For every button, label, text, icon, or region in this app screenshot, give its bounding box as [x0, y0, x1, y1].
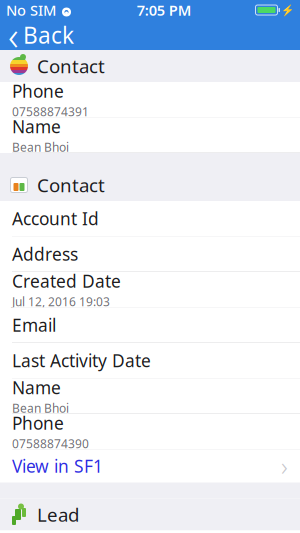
staticText: Account Id: [12, 207, 99, 230]
staticText: Phone: [12, 411, 64, 434]
button[interactable]: View in SF1: [0, 449, 300, 482]
staticText: 7:05 PM: [137, 0, 192, 20]
staticText: Last Activity Date: [12, 349, 151, 372]
staticText: 07588874390: [12, 435, 89, 451]
staticText: View in SF1: [12, 454, 103, 477]
staticText: 07588874391: [12, 103, 89, 119]
staticText: No SIM: [6, 0, 56, 20]
button[interactable]: ‹: [0, 20, 84, 50]
staticText: Bean Bhoi: [12, 139, 69, 155]
staticText: Address: [12, 242, 78, 265]
staticText: Jul 12, 2016 19:03: [12, 293, 110, 309]
staticText: Contact: [37, 54, 105, 78]
staticText: ‹: [8, 8, 19, 61]
staticText: Created Date: [12, 269, 121, 292]
staticText: Lead: [37, 502, 79, 527]
staticText: Name: [12, 115, 61, 138]
staticText: Phone: [12, 79, 64, 102]
staticText: ›: [281, 449, 288, 483]
staticText: ⚡: [281, 4, 294, 16]
staticText: Contact: [37, 173, 105, 197]
staticText: Back: [23, 20, 74, 50]
staticText: Name: [12, 376, 61, 399]
staticText: Email: [12, 313, 56, 336]
staticText: Bean Bhoi: [12, 400, 69, 416]
